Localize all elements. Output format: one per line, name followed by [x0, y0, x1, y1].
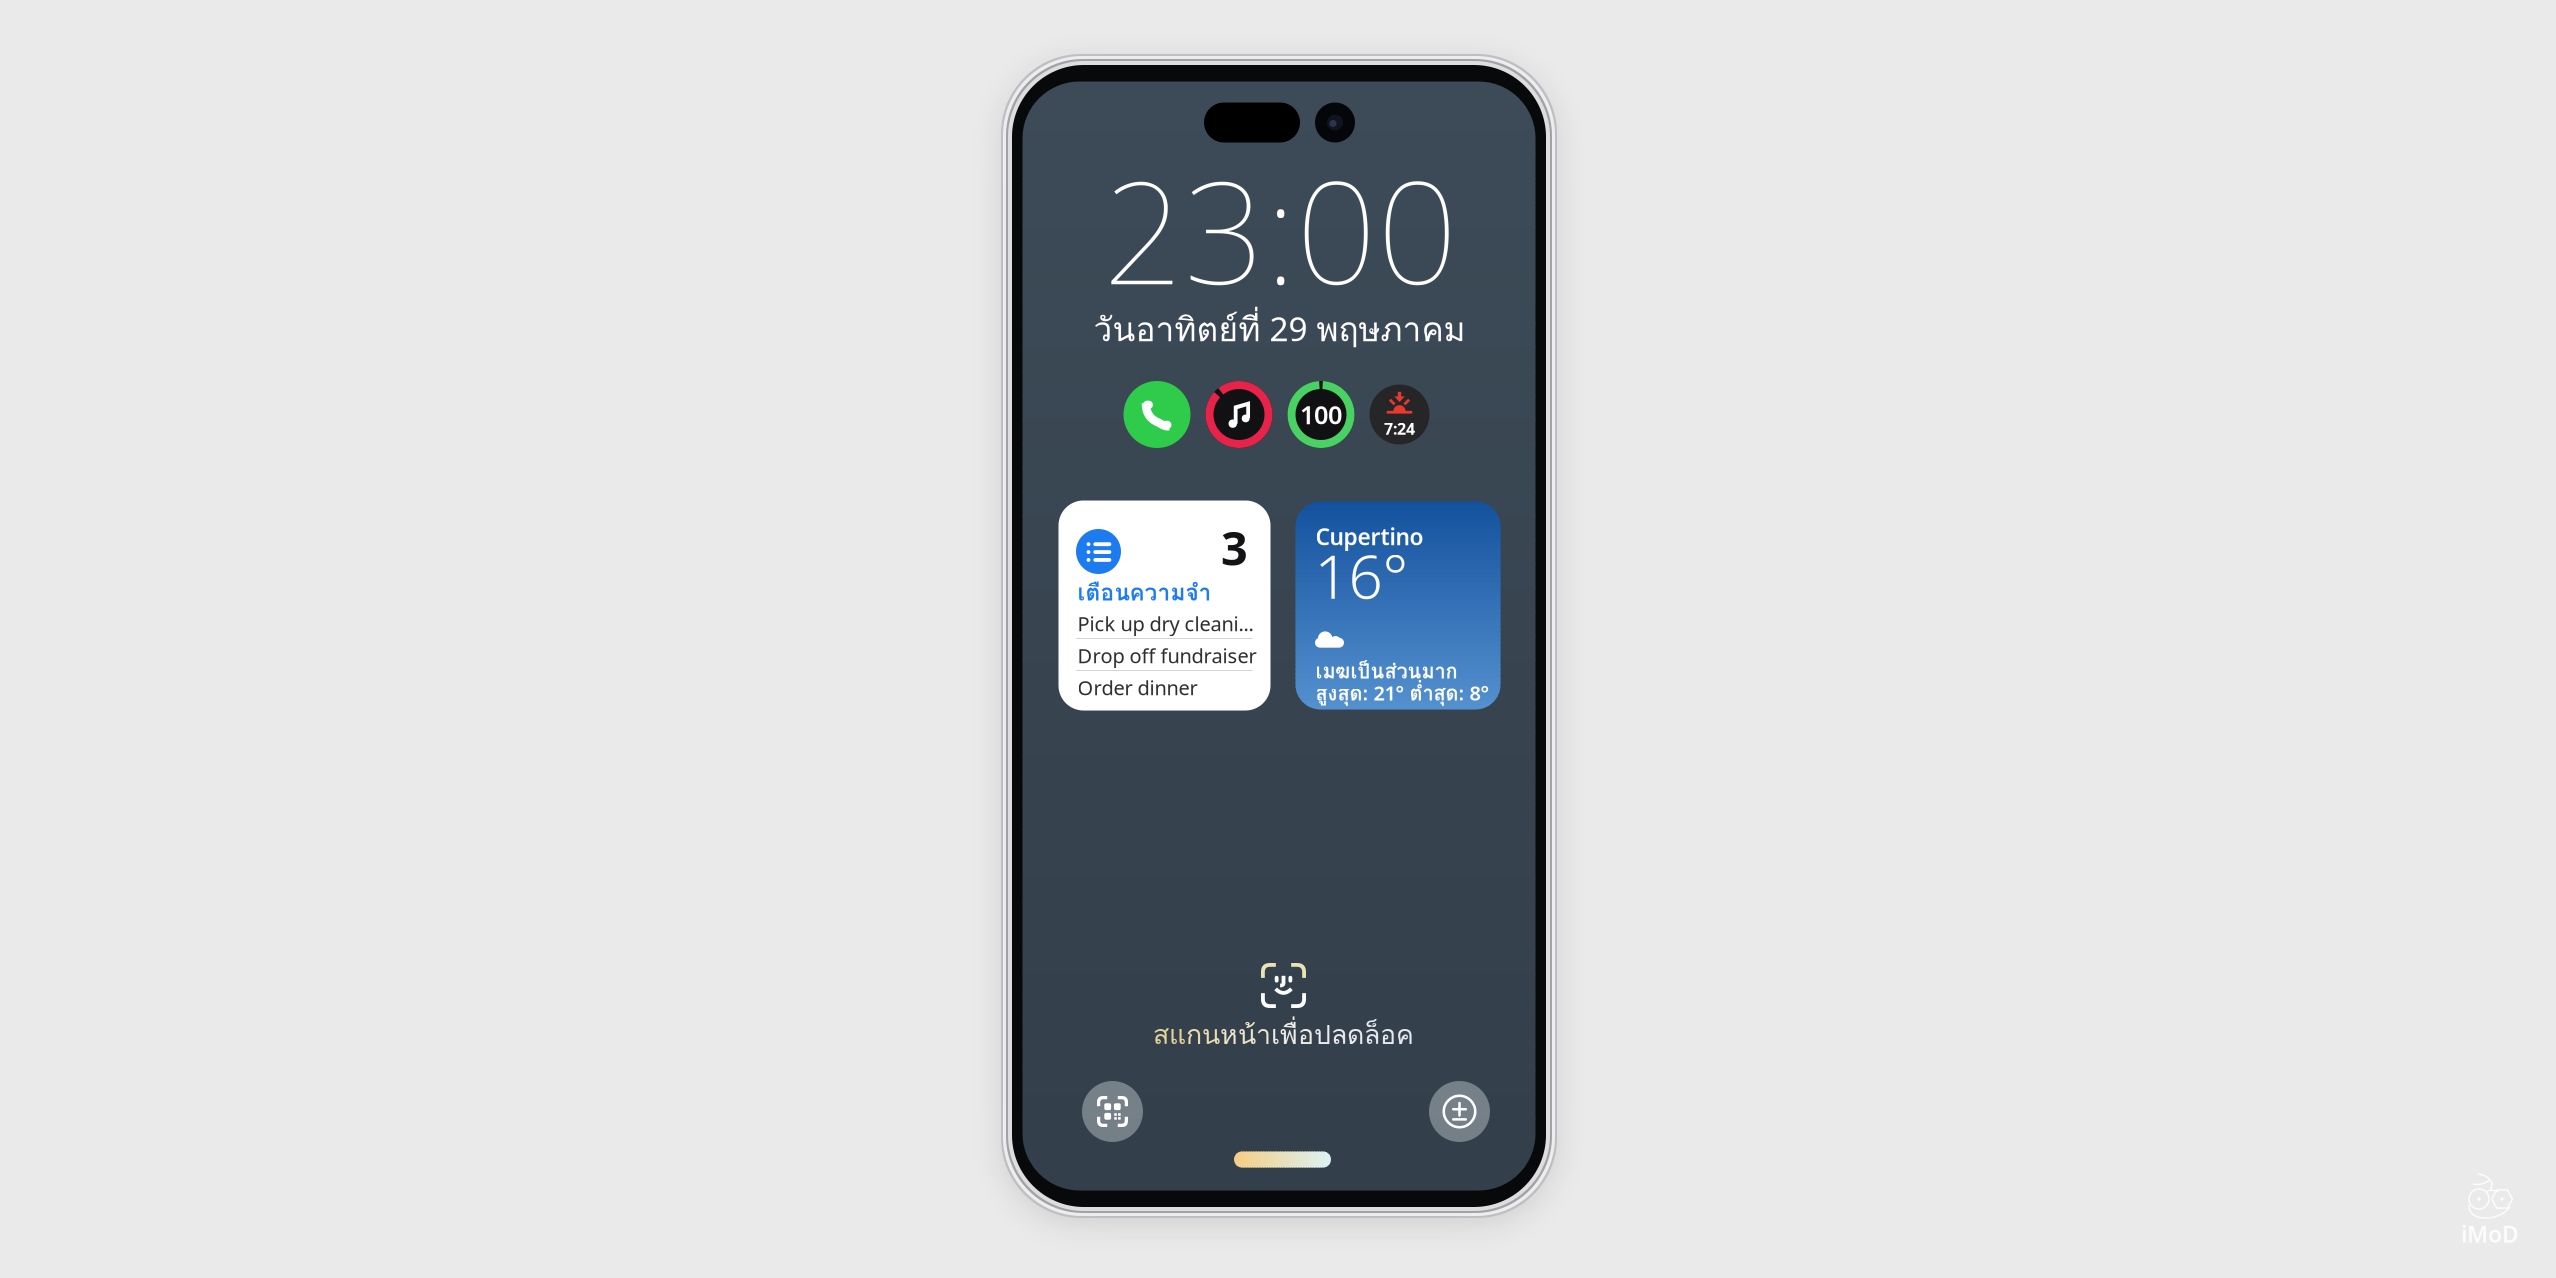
staticText: Drop off fundraiser — [1077, 642, 1256, 669]
staticText: Pick up dry cleani... — [1077, 610, 1253, 637]
staticText: สแ — [1153, 1014, 1186, 1055]
staticText: เตือนความจำ — [1077, 575, 1211, 610]
button[interactable]: Phone — [1123, 381, 1190, 448]
staticText: 23:00 — [1103, 136, 1458, 323]
staticText: กน — [1186, 1014, 1220, 1055]
staticText: ปลด — [1314, 1014, 1364, 1055]
button[interactable]: Battery 100 percent — [1287, 381, 1354, 448]
button[interactable]: Weather, Cupertino, 16 degrees, mostly c… — [1295, 501, 1500, 709]
staticText: หน้า — [1220, 1014, 1271, 1055]
staticText: เมฆเป็นส่วนมาก — [1315, 656, 1457, 687]
button[interactable]: Camera — [1429, 1081, 1490, 1142]
staticText: สูงสุด: 21° ต่ำสุด: 8° — [1315, 678, 1489, 709]
button[interactable]: Sunrise 7:24 — [1369, 384, 1429, 444]
staticText: iMoD — [2461, 1219, 2519, 1249]
staticText: วันอาทิตย์ที่ 29 พฤษภาคม — [1093, 304, 1465, 355]
staticText: ล็อค — [1364, 1014, 1414, 1055]
staticText: Order dinner — [1077, 674, 1197, 701]
button[interactable]: Code Scanner — [1082, 1081, 1143, 1142]
staticText: 100 — [1300, 398, 1342, 431]
button[interactable]: Reminders, 3 items — [1058, 500, 1270, 710]
staticText: เพื่อ — [1271, 1014, 1314, 1055]
button[interactable]: Music — [1205, 381, 1272, 448]
staticText: 16° — [1314, 536, 1408, 615]
staticText: 7:24 — [1384, 418, 1415, 439]
staticText: Cupertino — [1315, 521, 1423, 551]
staticText: 3 — [1221, 516, 1248, 578]
